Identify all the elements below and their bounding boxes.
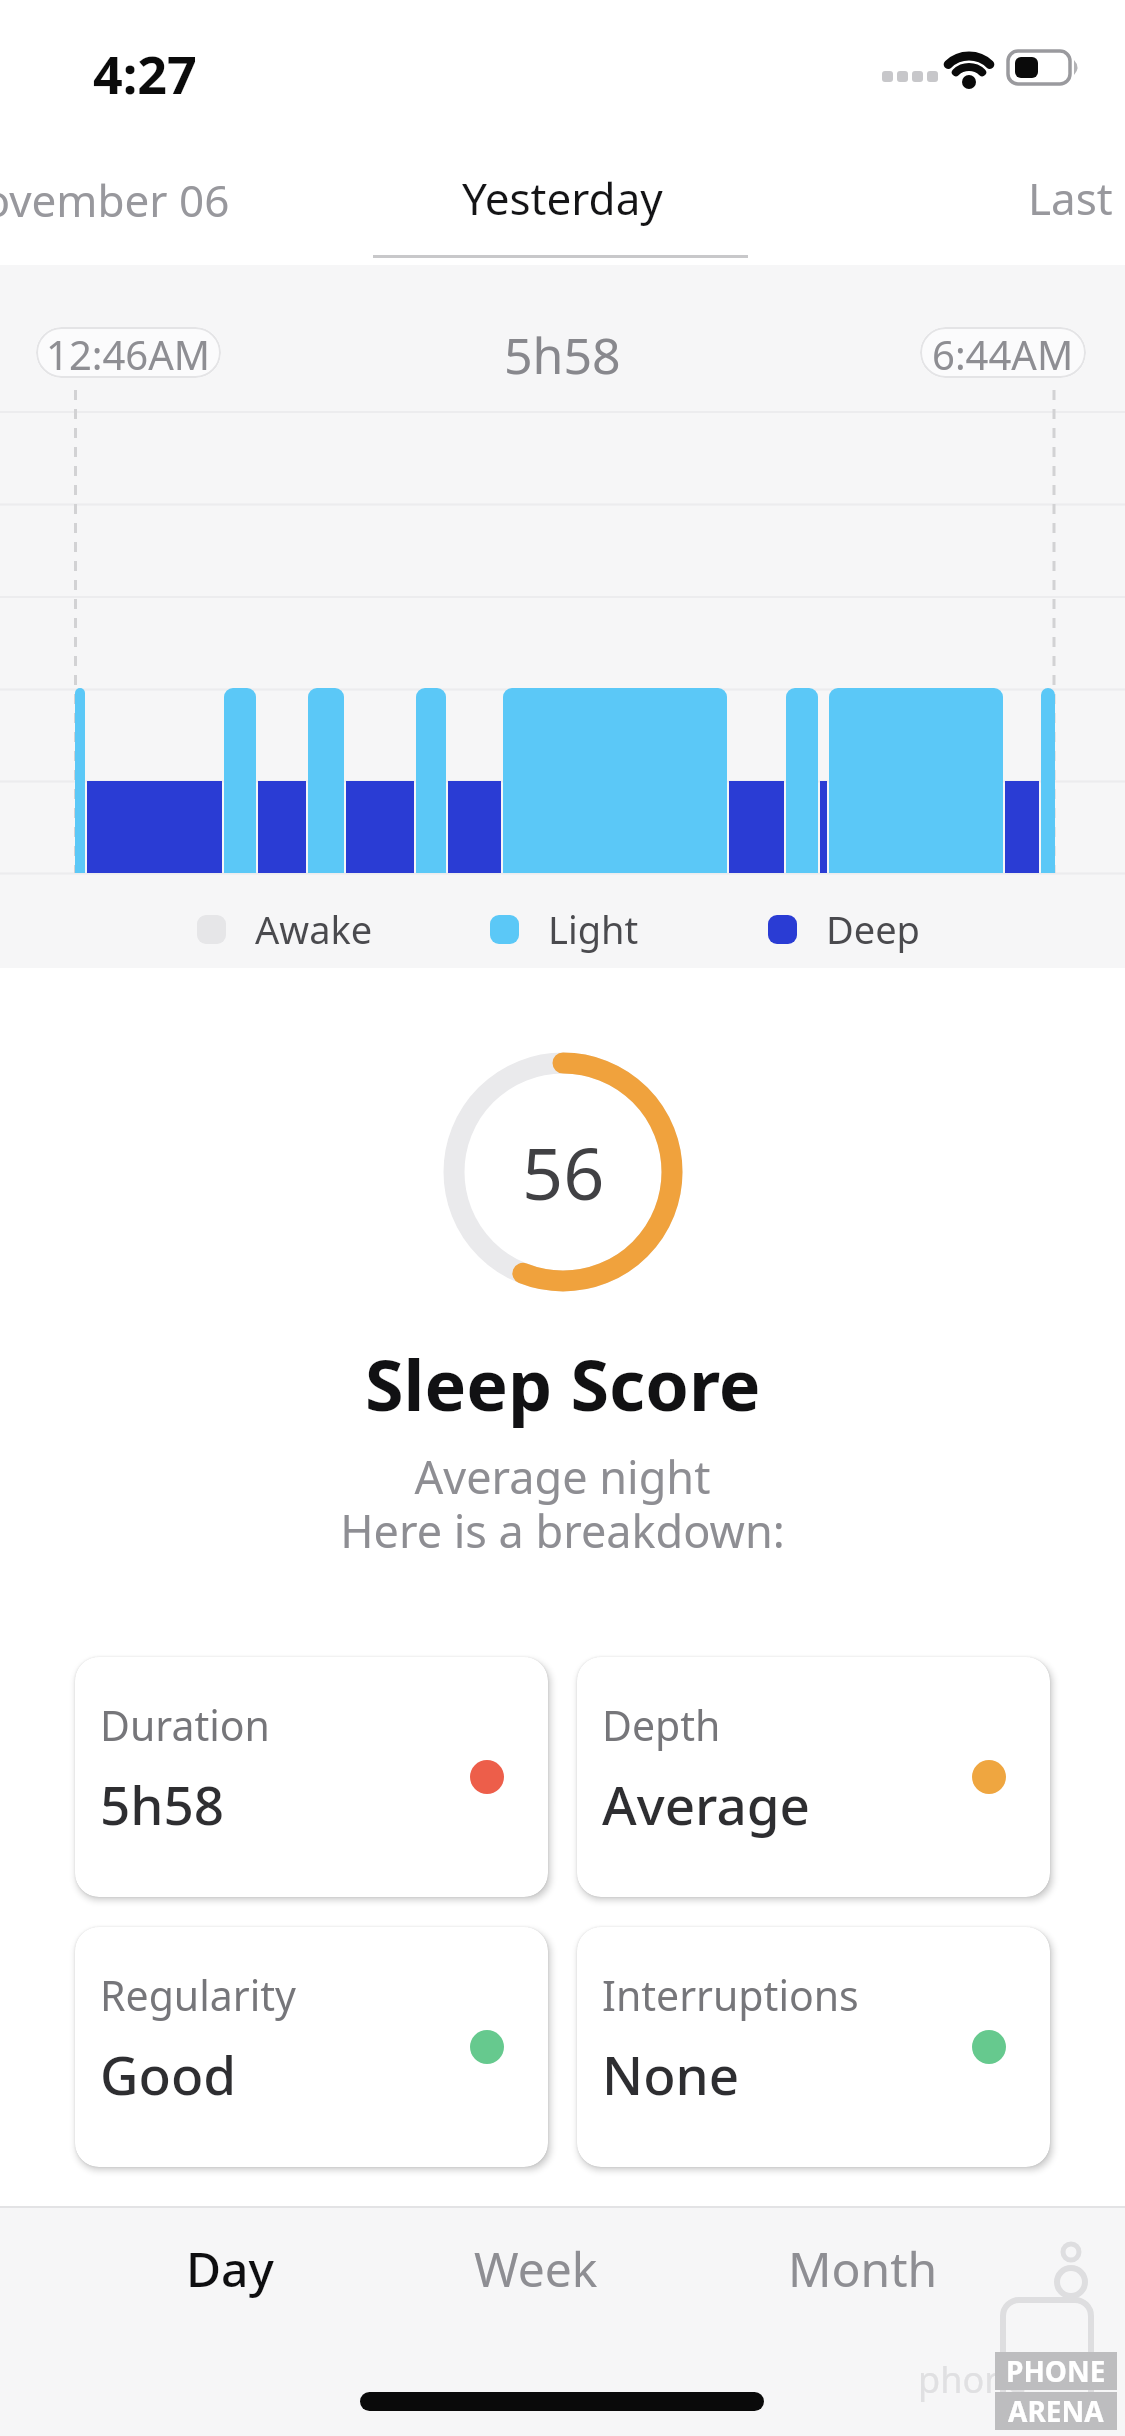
- button[interactable]: Interruptions: [577, 1927, 1050, 2167]
- staticText: phone: [918, 2355, 1027, 2404]
- staticText: Deep: [826, 903, 920, 955]
- button[interactable]: Regularity: [75, 1927, 548, 2167]
- button[interactable]: Duration: [75, 1657, 548, 1897]
- staticText: Week: [474, 2236, 598, 2301]
- staticText: PHONE: [1006, 2352, 1106, 2390]
- button[interactable]: Last: [1028, 168, 1113, 228]
- staticText: Yesterday: [462, 168, 663, 228]
- staticText: 12:46AM: [46, 327, 211, 378]
- staticText: November 06: [0, 170, 230, 230]
- staticText: Day: [186, 2236, 274, 2301]
- staticText: Month: [788, 2236, 938, 2301]
- button[interactable]: Depth: [577, 1657, 1050, 1897]
- button[interactable]: Week: [426, 2228, 646, 2308]
- staticText: ARENA: [1008, 2392, 1104, 2430]
- staticText: 5h58: [100, 1768, 225, 1840]
- staticText: 56: [522, 1123, 605, 1221]
- staticText: Average night Here is a breakdown:: [340, 1446, 785, 1562]
- staticText: Interruptions: [602, 1967, 859, 2023]
- staticText: None: [602, 2038, 740, 2110]
- button[interactable]: Month: [753, 2228, 973, 2308]
- staticText: Average: [602, 1768, 811, 1840]
- staticText: 5h58: [504, 321, 621, 389]
- button[interactable]: Day: [120, 2228, 340, 2308]
- staticText: Duration: [100, 1697, 270, 1753]
- staticText: Depth: [602, 1697, 721, 1753]
- staticText: 6:44AM: [932, 327, 1074, 378]
- staticText: Good: [100, 2038, 237, 2110]
- button[interactable]: November 06: [0, 170, 230, 230]
- staticText: 4:27: [93, 38, 197, 109]
- staticText: Regularity: [100, 1967, 296, 2023]
- button[interactable]: Yesterday: [462, 168, 663, 228]
- staticText: Last: [1028, 168, 1113, 228]
- staticText: Awake: [255, 903, 373, 955]
- staticText: Light: [548, 903, 639, 955]
- staticText: Sleep Score: [365, 1336, 761, 1431]
